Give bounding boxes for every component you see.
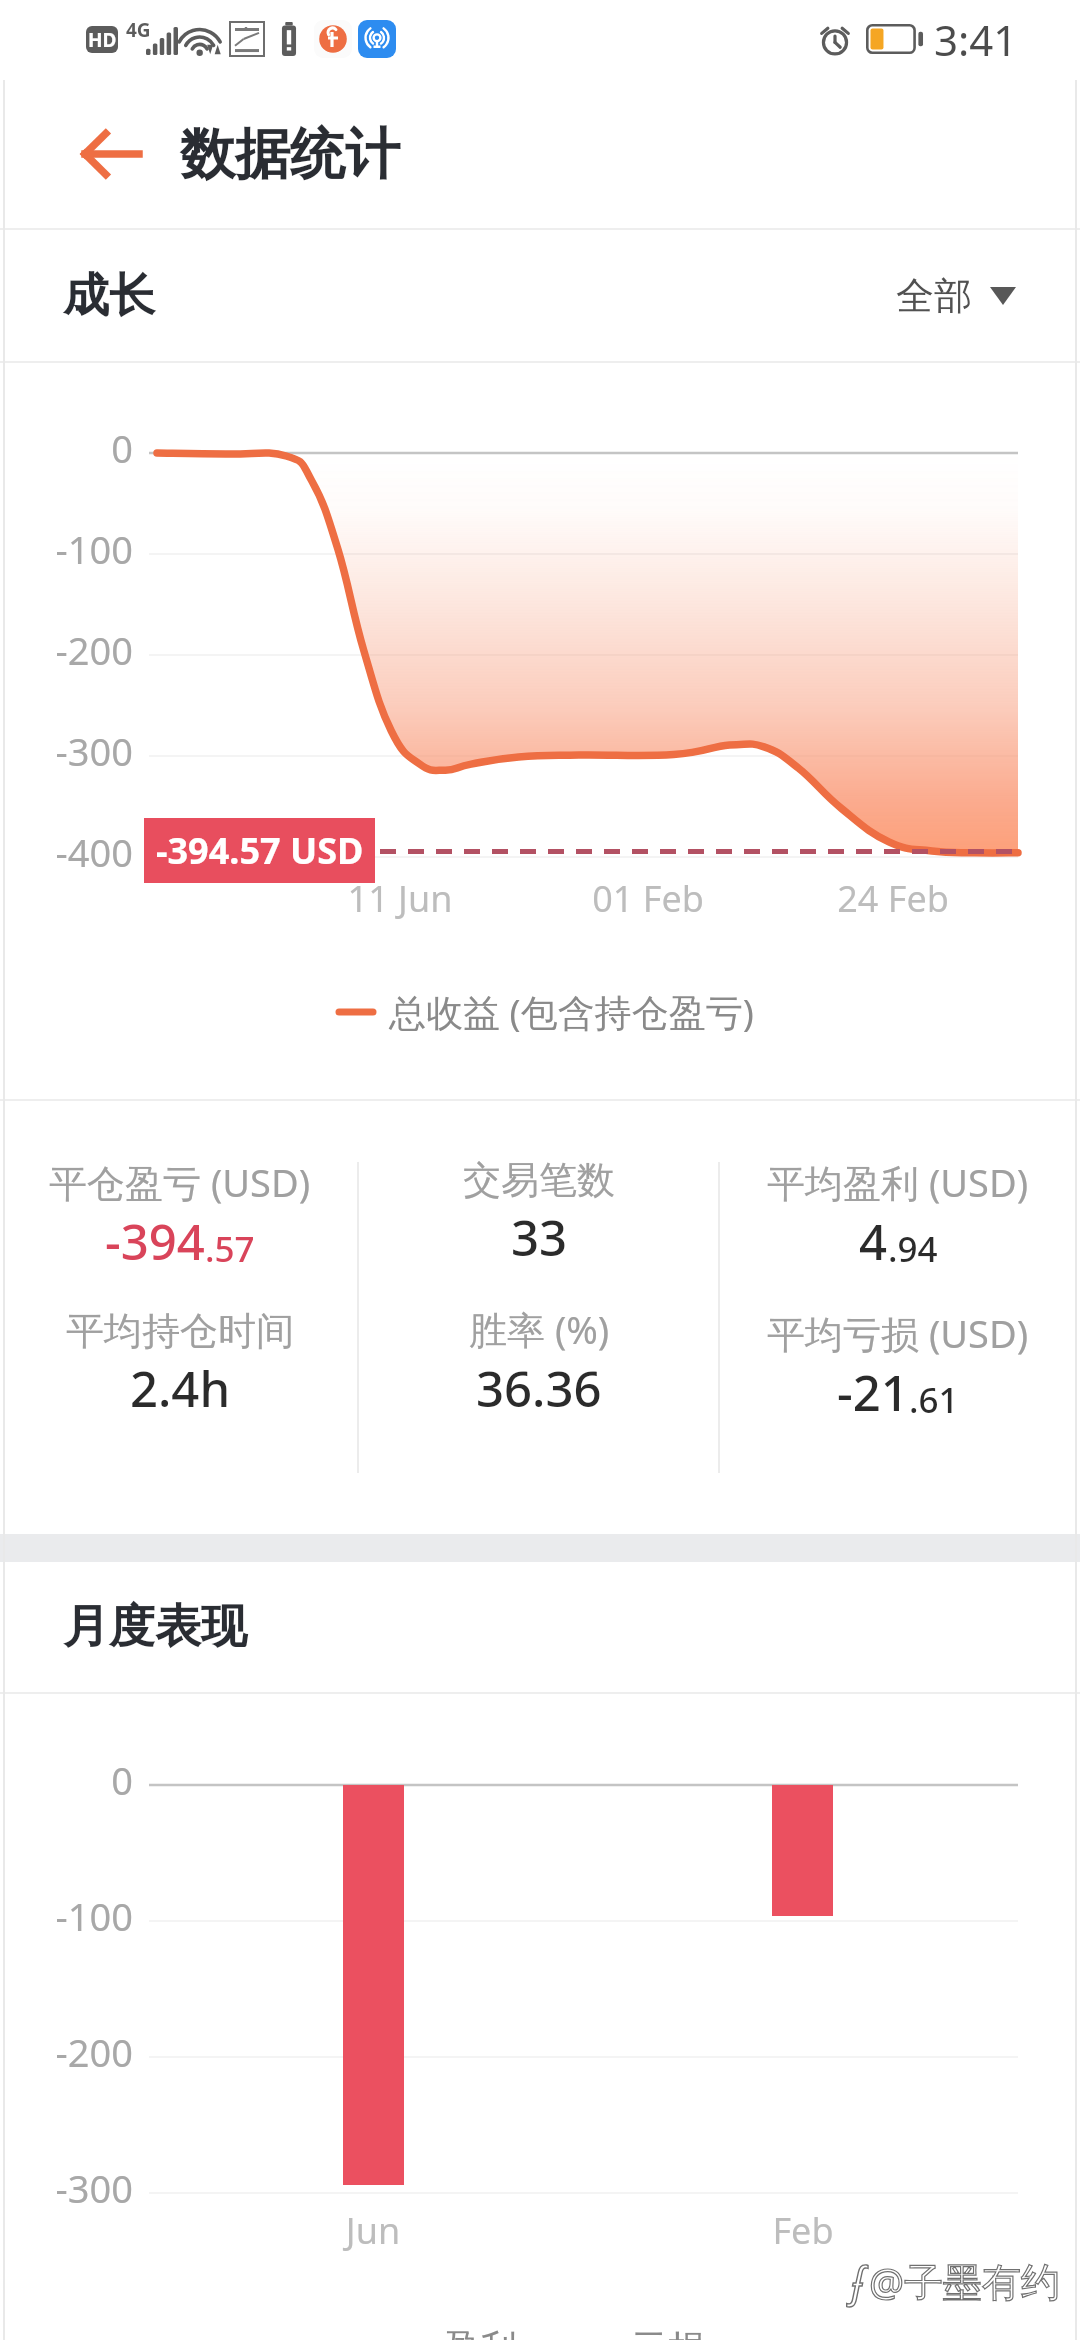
staticText: 平仓盈亏 (USD): [49, 1156, 311, 1208]
staticText: 平均盈利 (USD): [767, 1156, 1029, 1208]
staticText: 成长: [63, 267, 155, 325]
staticText: 盈利: [443, 2325, 517, 2340]
staticText: 0: [0, 1754, 133, 1806]
staticText: -200: [0, 2026, 133, 2078]
button[interactable]: 全部: [882, 254, 1030, 338]
staticText: 4: [859, 1208, 888, 1275]
staticText: 胜率 (%): [469, 1303, 610, 1355]
staticText: 交易笔数: [463, 1156, 615, 1204]
staticText: -300: [0, 725, 133, 777]
button[interactable]: Back: [28, 80, 194, 228]
staticText: -21: [837, 1359, 909, 1426]
staticText: .61: [909, 1376, 959, 1424]
staticText: 24 Feb: [813, 874, 973, 923]
staticText: @子墨有约: [869, 2254, 1061, 2307]
staticText: -394.57 USD: [156, 826, 364, 875]
staticText: 2.4h: [130, 1355, 231, 1422]
staticText: 3:41: [934, 11, 1018, 68]
staticText: -394: [105, 1208, 205, 1275]
staticText: 01 Feb: [568, 874, 728, 923]
staticText: -100: [0, 1890, 133, 1942]
staticText: .57: [205, 1225, 255, 1273]
staticText: 数据统计: [180, 120, 400, 189]
staticText: Jun: [293, 2206, 453, 2255]
staticText: 36.36: [476, 1355, 602, 1422]
staticText: 平均持仓时间: [66, 1307, 294, 1355]
staticText: .94: [888, 1225, 938, 1273]
staticText: Feb: [723, 2206, 883, 2255]
staticText: HD: [88, 27, 117, 53]
staticText: ʄ: [852, 2252, 863, 2309]
staticText: 月度表现: [63, 1598, 247, 1656]
staticText: 平均亏损 (USD): [767, 1307, 1029, 1359]
staticText: 亏损: [631, 2325, 705, 2340]
staticText: -100: [0, 523, 133, 575]
staticText: 4G: [126, 17, 151, 43]
staticText: -400: [0, 826, 133, 878]
staticText: -300: [0, 2162, 133, 2214]
staticText: 33: [511, 1204, 568, 1271]
staticText: 全部: [896, 272, 972, 320]
staticText: 0: [0, 422, 133, 474]
staticText: 总收益 (包含持仓盈亏): [389, 986, 754, 1037]
staticText: 11 Jun: [320, 874, 480, 923]
staticText: -200: [0, 624, 133, 676]
